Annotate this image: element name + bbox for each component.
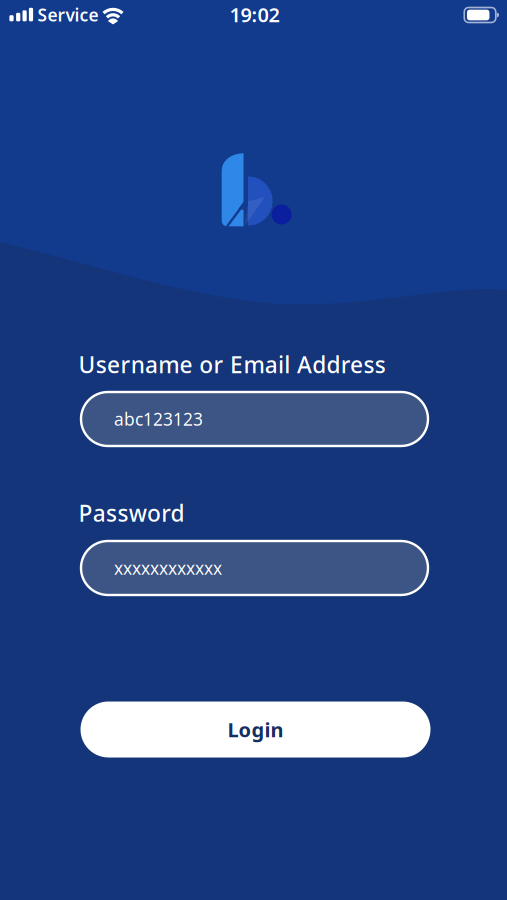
staticText: Service (37, 3, 98, 26)
staticText: Username or Email Address (78, 349, 386, 379)
staticText: xxxxxxxxxxxx (114, 556, 222, 579)
staticText: Password (78, 498, 185, 528)
staticText: 19:02 (229, 1, 279, 28)
staticText: Login (227, 716, 283, 743)
button[interactable]: Password (81, 541, 428, 595)
staticText: abc123123 (114, 407, 203, 430)
button[interactable]: Username or Email Address (81, 392, 428, 446)
button[interactable]: Login (80, 701, 430, 757)
